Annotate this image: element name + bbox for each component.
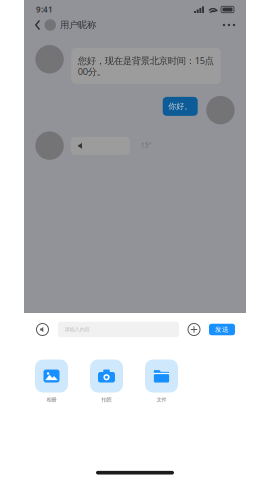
button[interactable]: 发送 xyxy=(209,324,235,335)
button[interactable]: 请输入内容 xyxy=(58,322,179,337)
button[interactable]: 文件 xyxy=(145,359,178,403)
button[interactable]: Play voice message xyxy=(71,137,130,155)
staticText: 9:41 xyxy=(36,4,53,15)
staticText: 相册 xyxy=(46,396,56,403)
button[interactable]: More xyxy=(219,16,239,34)
button[interactable]: Back to 用户昵称 xyxy=(35,15,96,35)
staticText: 发送 xyxy=(215,325,229,334)
staticText: 你好。 xyxy=(168,101,192,111)
button[interactable]: Add attachment xyxy=(186,321,202,337)
staticText: 用户昵称 xyxy=(60,19,96,31)
button[interactable]: 相册 xyxy=(35,359,68,403)
button[interactable]: 拍照 xyxy=(90,359,123,403)
staticText: 拍照 xyxy=(101,396,111,403)
staticText: 您好，现在是背景北京时间：15点00分。 xyxy=(78,54,214,78)
staticText: 15" xyxy=(141,140,152,149)
staticText: 文件 xyxy=(156,396,166,403)
staticText: 请输入内容 xyxy=(64,326,89,333)
button[interactable]: Voice input xyxy=(34,321,50,337)
